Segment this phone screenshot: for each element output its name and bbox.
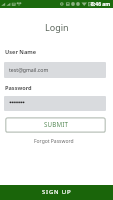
button[interactable]: User name input [4, 62, 106, 78]
staticText: test@gmail.com [9, 66, 49, 73]
button[interactable]: SUBMIT [5, 117, 106, 133]
button[interactable]: Password input [4, 96, 106, 111]
staticText: User Name [5, 48, 37, 56]
button[interactable]: Forgot Password [28, 136, 80, 147]
staticText: Password [5, 84, 32, 92]
staticText: 8:46 am [91, 1, 111, 8]
staticText: SIGN UP [42, 188, 72, 196]
staticText: Forgot Password [34, 138, 74, 145]
button[interactable]: SIGN UP [0, 185, 113, 200]
staticText: Login [45, 21, 69, 33]
staticText: SUBMIT [44, 120, 68, 128]
